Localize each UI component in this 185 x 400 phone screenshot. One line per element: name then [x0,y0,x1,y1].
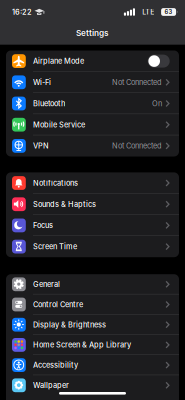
staticText: Not Connected [112,141,162,150]
staticText: Not Connected [112,78,162,87]
staticText: General [33,280,60,289]
staticText: Accessibility [33,361,78,370]
staticText: Bluetooth [33,99,65,108]
button[interactable]: Focus [6,215,179,236]
button[interactable]: Wallpaper [6,375,179,395]
staticText: Notifications [33,178,78,187]
staticText: Wi-Fi [33,78,51,87]
staticText: Control Centre [33,300,83,309]
staticText: Home Screen & App Library [33,340,131,349]
button[interactable]: Sounds & Haptics [6,194,179,215]
staticText: VPN [33,141,49,150]
staticText: 63 [165,8,173,15]
staticText: Focus [33,221,53,230]
button[interactable]: Screen Time [6,236,179,257]
staticText: Airplane Mode [33,57,84,66]
staticText: Wallpaper [33,381,69,390]
button[interactable]: Wi-Fi [6,72,179,93]
button[interactable]: Airplane Mode [6,50,179,72]
staticText: Display & Brightness [33,320,106,329]
staticText: 16:22 [12,8,32,16]
staticText: Settings [76,28,109,38]
staticText: LTE [142,8,154,16]
staticText: Mobile Service [33,120,85,129]
button[interactable]: VPN [6,135,179,156]
button[interactable]: Notifications [6,172,179,194]
button[interactable]: Home Screen & App Library [6,335,179,355]
button[interactable]: Accessibility [6,355,179,375]
staticText: On [152,99,162,108]
button[interactable]: General [6,274,179,294]
staticText: Sounds & Haptics [33,200,96,209]
button[interactable]: Mobile Service [6,114,179,135]
button[interactable]: Control Centre [6,294,179,315]
button[interactable]: Bluetooth [6,93,179,114]
staticText: Screen Time [33,242,77,251]
button[interactable]: Display & Brightness [6,315,179,335]
